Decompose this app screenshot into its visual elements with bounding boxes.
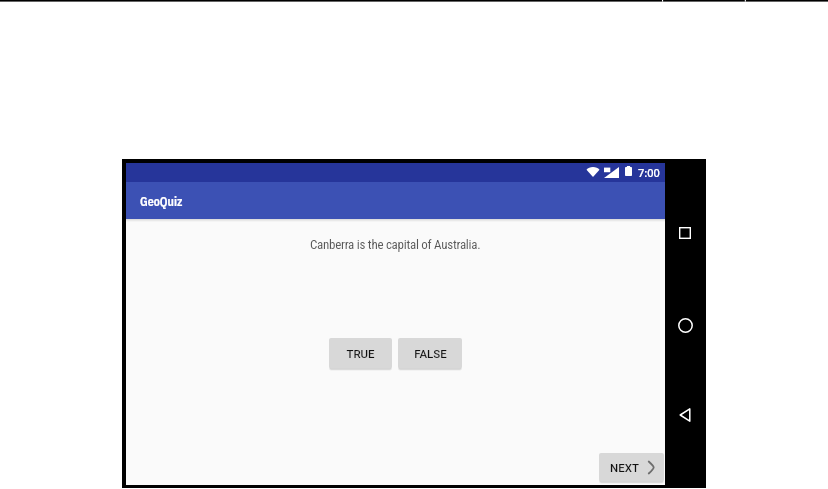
staticText: TRUE bbox=[346, 347, 375, 360]
button[interactable]: Recent apps bbox=[672, 220, 698, 246]
staticText: Canberra is the capital of Australia. bbox=[310, 237, 481, 252]
staticText: GeoQuiz bbox=[140, 194, 183, 210]
button[interactable]: FALSE bbox=[398, 338, 462, 371]
staticText: 7:00 bbox=[638, 165, 660, 180]
button[interactable]: Home bbox=[672, 312, 698, 338]
button[interactable]: NEXT bbox=[599, 453, 664, 484]
staticText: NEXT bbox=[610, 461, 639, 474]
button[interactable]: TRUE bbox=[329, 338, 392, 371]
staticText: FALSE bbox=[414, 347, 447, 360]
button[interactable]: Back bbox=[672, 402, 698, 428]
